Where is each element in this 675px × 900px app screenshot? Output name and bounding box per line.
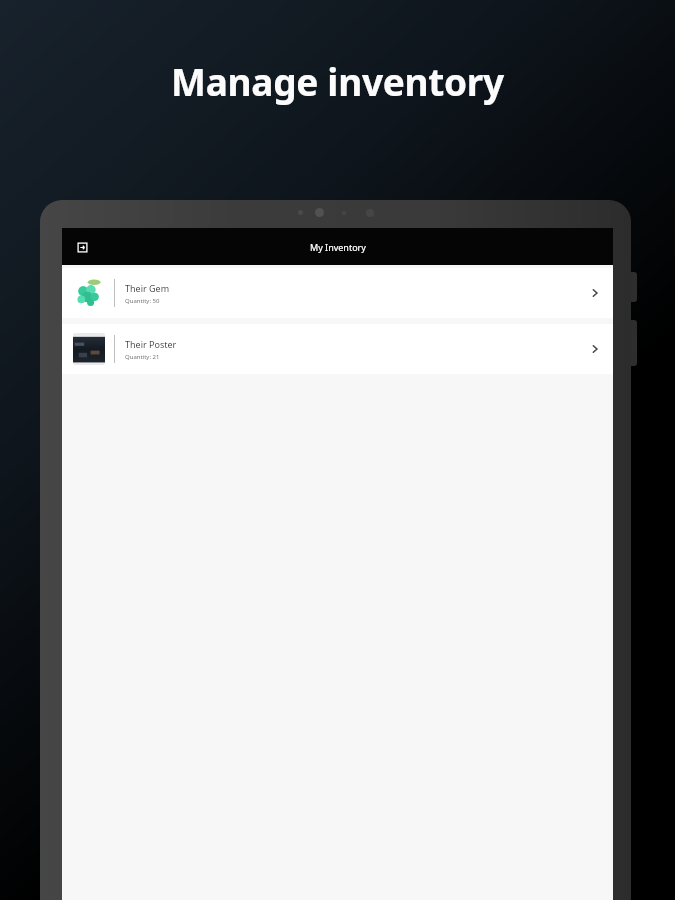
staticText: Their Poster	[125, 338, 177, 350]
button[interactable]: Exit	[70, 235, 94, 259]
staticText: My Inventory	[310, 241, 366, 253]
staticText: Manage inventory	[171, 56, 504, 106]
button[interactable]: Their Gem	[62, 268, 613, 318]
staticText: Quantity: 50	[125, 297, 160, 305]
staticText: Their Gem	[125, 282, 170, 294]
staticText: Quantity: 21	[125, 353, 160, 361]
button[interactable]: Their Poster	[62, 324, 613, 374]
